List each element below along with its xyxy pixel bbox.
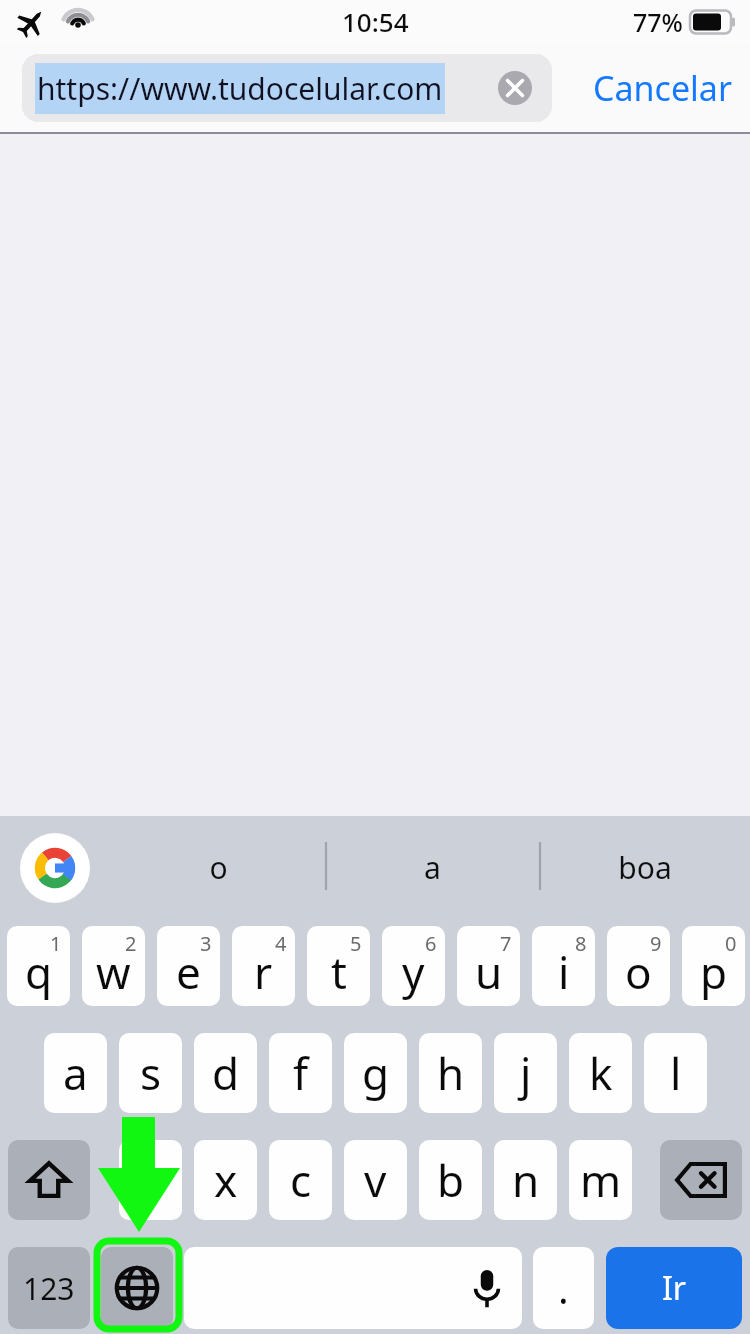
button[interactable]: Cancelar [593,65,732,111]
staticText: 1 [50,930,62,957]
button[interactable]: j [494,1033,557,1113]
staticText: https://www.tudocelular.com [37,68,443,109]
button[interactable]: Google [20,833,90,903]
staticText: l [670,1043,682,1103]
staticText: p [700,942,728,1002]
staticText: 5 [350,930,362,957]
button[interactable]: p [682,926,745,1006]
button[interactable]: t [307,926,370,1006]
staticText: u [475,942,503,1002]
button[interactable]: z [119,1140,182,1220]
staticText: q [25,942,53,1002]
staticText: z [140,1150,161,1210]
staticText: . [558,1261,569,1315]
staticText: o [625,942,652,1002]
staticText: n [512,1150,540,1210]
staticText: 77% [633,5,683,39]
button[interactable]: k [569,1033,632,1113]
button[interactable]: d [194,1033,257,1113]
staticText: j [520,1043,532,1103]
staticText: 6 [425,930,437,957]
staticText: i [558,942,570,1002]
staticText: y [402,942,425,1002]
button[interactable]: s [119,1033,182,1113]
button[interactable]: Apagar [660,1140,742,1220]
staticText: d [212,1043,240,1103]
button[interactable]: m [569,1140,632,1220]
button[interactable]: l [644,1033,707,1113]
button[interactable]: b [419,1140,482,1220]
button[interactable]: boa [555,834,735,900]
staticText: b [437,1150,465,1210]
staticText: h [437,1043,465,1103]
staticText: v [364,1150,387,1210]
staticText: 8 [575,930,587,957]
button[interactable]: h [419,1033,482,1113]
button[interactable]: v [344,1140,407,1220]
staticText: a [424,847,441,888]
staticText: o [209,847,228,888]
button[interactable]: Ir [606,1247,742,1329]
staticText: 0 [725,930,737,957]
staticText: boa [618,847,672,888]
button[interactable]: f [269,1033,332,1113]
staticText: w [96,942,131,1002]
button[interactable]: Espaço [184,1247,522,1329]
staticText: 2 [125,930,137,957]
staticText: 10:54 [342,4,409,39]
button[interactable]: o [607,926,670,1006]
staticText: Cancelar [593,65,732,111]
button[interactable]: o [128,834,308,900]
button[interactable]: e [157,926,220,1006]
button[interactable]: y [382,926,445,1006]
staticText: m [580,1150,622,1210]
button[interactable]: Limpar [494,67,536,109]
staticText: a [63,1043,88,1103]
button[interactable]: a [342,834,522,900]
button[interactable]: . [533,1247,594,1329]
staticText: c [290,1150,312,1210]
button[interactable]: i [532,926,595,1006]
button[interactable]: w [82,926,145,1006]
button[interactable]: 123 [8,1247,90,1329]
button[interactable]: Mudar idioma do teclado [101,1247,173,1329]
button[interactable]: n [494,1140,557,1220]
staticText: k [589,1043,613,1103]
button[interactable]: u [457,926,520,1006]
staticText: x [214,1150,238,1210]
staticText: g [362,1043,390,1103]
staticText: e [176,942,201,1002]
button[interactable]: q [7,926,70,1006]
button[interactable]: a [44,1033,107,1113]
staticText: Ir [662,1266,687,1310]
button[interactable]: c [269,1140,332,1220]
staticText: r [254,942,273,1002]
staticText: 4 [275,930,287,957]
button[interactable]: g [344,1033,407,1113]
button[interactable]: https://www.tudocelular.com [22,54,552,122]
staticText: 9 [650,930,662,957]
staticText: s [140,1043,162,1103]
button[interactable]: r [232,926,295,1006]
staticText: 3 [200,930,212,957]
staticText: t [331,942,347,1002]
staticText: 7 [500,930,512,957]
button[interactable]: x [194,1140,257,1220]
staticText: f [293,1043,309,1103]
button[interactable]: Shift [8,1140,90,1220]
staticText: 123 [23,1268,75,1309]
